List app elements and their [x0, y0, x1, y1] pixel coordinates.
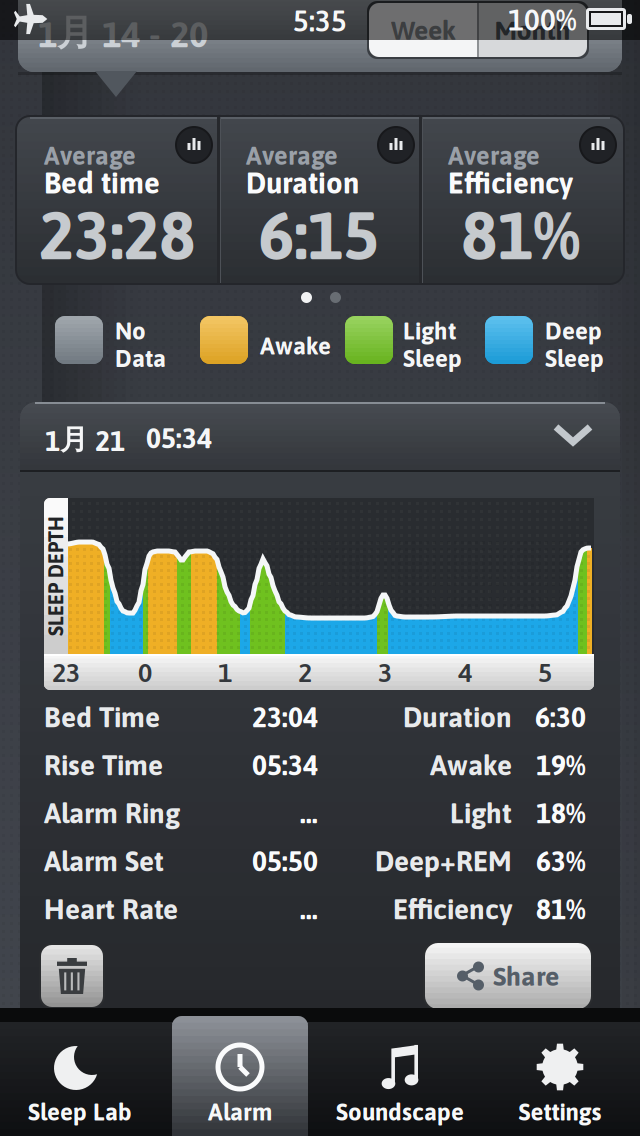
- staticText: Average: [246, 141, 338, 170]
- staticText: Alarm Set: [44, 845, 164, 877]
- staticText: Heart Rate: [44, 893, 178, 925]
- staticText: 1月 14 - 20: [38, 10, 208, 55]
- staticText: Duration: [403, 701, 512, 733]
- staticText: Week: [391, 15, 456, 45]
- staticText: 0: [138, 657, 152, 688]
- staticText: Awake: [260, 332, 331, 359]
- staticText: Bed Time: [44, 701, 160, 733]
- staticText: No Data: [115, 317, 166, 372]
- staticText: 23:04: [252, 701, 318, 733]
- staticText: Awake: [430, 749, 512, 781]
- staticText: Light: [450, 797, 512, 829]
- staticText: 05:34: [252, 749, 318, 781]
- staticText: Sleep Lab: [28, 1098, 132, 1125]
- staticText: Efficiency: [393, 893, 512, 925]
- staticText: ...: [300, 797, 318, 829]
- staticText: 05:50: [252, 845, 318, 877]
- staticText: Efficiency: [448, 166, 573, 200]
- staticText: Average: [448, 141, 540, 170]
- staticText: Alarm Ring: [44, 797, 180, 829]
- staticText: 23:28: [38, 197, 195, 273]
- staticText: Alarm: [208, 1098, 272, 1125]
- button[interactable]: Show Efficiency chart: [580, 127, 616, 163]
- staticText: 05:34: [146, 422, 212, 454]
- staticText: 5: [538, 657, 552, 688]
- staticText: 81%: [461, 197, 580, 273]
- staticText: Light Sleep: [403, 317, 462, 372]
- staticText: Month: [494, 15, 570, 45]
- staticText: 3: [378, 657, 392, 688]
- staticText: Share: [493, 961, 559, 991]
- staticText: 18%: [536, 797, 586, 829]
- staticText: Deep+REM: [375, 845, 512, 877]
- button[interactable]: Sleep Lab: [0, 1024, 160, 1136]
- staticText: 5:35: [293, 4, 347, 38]
- staticText: 63%: [536, 845, 586, 877]
- staticText: 1月 21: [45, 422, 125, 457]
- button[interactable]: Show Bed time chart: [176, 127, 212, 163]
- staticText: Settings: [518, 1098, 601, 1125]
- staticText: Average: [44, 141, 136, 170]
- staticText: SLEEP DEPTH: [0, 564, 116, 587]
- button[interactable]: Week: [369, 3, 478, 57]
- button[interactable]: Collapse day details: [20, 402, 620, 470]
- staticText: 100%: [508, 3, 576, 37]
- staticText: 23: [52, 657, 80, 688]
- staticText: Rise Time: [44, 749, 163, 781]
- staticText: 2: [298, 657, 312, 688]
- staticText: ...: [300, 893, 318, 925]
- button[interactable]: Delete: [40, 944, 104, 1008]
- staticText: Duration: [246, 166, 359, 200]
- button[interactable]: Month: [478, 3, 587, 57]
- button[interactable]: Soundscape: [320, 1024, 480, 1136]
- button[interactable]: Alarm: [160, 1024, 320, 1136]
- staticText: Bed time: [44, 166, 160, 200]
- staticText: 6:15: [258, 197, 379, 273]
- button[interactable]: Show Duration chart: [378, 127, 414, 163]
- staticText: 1: [218, 657, 232, 688]
- staticText: 6:30: [535, 701, 586, 733]
- button[interactable]: Settings: [480, 1024, 640, 1136]
- staticText: Deep Sleep: [545, 317, 604, 372]
- staticText: 4: [458, 657, 472, 688]
- button[interactable]: Share: [424, 942, 592, 1010]
- staticText: 19%: [536, 749, 586, 781]
- staticText: Soundscape: [336, 1098, 464, 1125]
- staticText: 81%: [536, 893, 586, 925]
